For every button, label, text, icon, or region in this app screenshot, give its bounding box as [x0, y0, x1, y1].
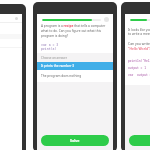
button[interactable]	[129, 135, 150, 146]
button[interactable]: The program does nothing	[37, 70, 113, 82]
button[interactable]: Solve	[41, 135, 109, 146]
staticText: Choose an answer	[41, 56, 67, 60]
staticText: It looks like you want to write a messag…	[128, 28, 150, 36]
other: More	[15, 17, 18, 20]
staticText: Solve	[70, 138, 80, 143]
button[interactable]: It prints the number 3	[37, 62, 113, 70]
staticText: It prints the number 3	[41, 64, 75, 68]
staticText: var a = 3 print(a)	[41, 43, 59, 51]
staticText: println("Hello") output = 1 var output =…	[128, 59, 150, 77]
button[interactable]: Hint	[104, 17, 109, 22]
staticText: A program is a recipe that tells a compu…	[41, 24, 109, 38]
staticText: The program does nothing	[41, 74, 82, 78]
button[interactable]: More	[0, 14, 22, 22]
staticText: Can you write "Hello World"?	[128, 41, 150, 51]
